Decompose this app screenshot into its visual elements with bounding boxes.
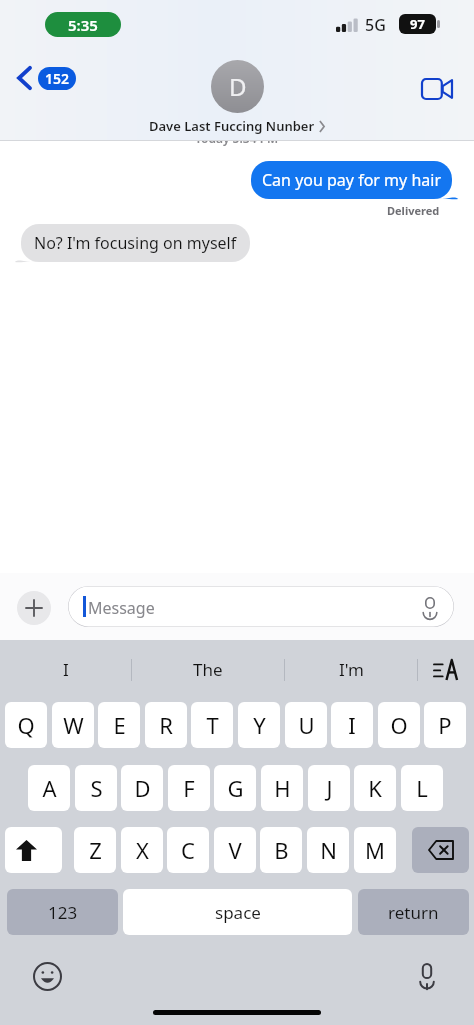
staticText: Dave Last Fuccing Nunber [149, 117, 315, 135]
staticText: S [90, 773, 103, 803]
button[interactable]: E [98, 702, 140, 748]
button[interactable]: I [0, 640, 131, 699]
button[interactable]: X [121, 827, 163, 873]
button[interactable]: S [75, 765, 117, 811]
button[interactable]: R [145, 702, 187, 748]
staticText: space [215, 901, 261, 924]
button[interactable]: A [28, 765, 70, 811]
staticText: T [206, 710, 219, 740]
staticText: W [63, 710, 84, 740]
staticText: K [368, 773, 382, 803]
button[interactable]: F [168, 765, 210, 811]
button[interactable]: Y [238, 702, 280, 748]
staticText: return [388, 901, 439, 924]
staticText: O [390, 710, 408, 740]
button[interactable]: V [214, 827, 256, 873]
button[interactable]: Add attachment [17, 591, 51, 625]
staticText: I'm [339, 658, 364, 681]
button[interactable]: N [307, 827, 349, 873]
staticText: N [320, 835, 337, 865]
button[interactable]: Dictation [404, 953, 450, 999]
staticText: C [181, 835, 195, 865]
button[interactable]: D [121, 765, 163, 811]
button[interactable]: W [52, 702, 94, 748]
staticText: H [274, 773, 291, 803]
button[interactable]: C [167, 827, 209, 873]
staticText: 97 [410, 15, 425, 33]
button[interactable]: Z [74, 827, 116, 873]
button[interactable]: return [358, 889, 469, 935]
staticText: Today 5:34 PM [195, 130, 279, 146]
staticText: 123 [48, 901, 78, 924]
staticText: E [113, 710, 126, 740]
staticText: 5G [365, 14, 386, 36]
staticText: I [63, 658, 69, 681]
button[interactable]: U [285, 702, 327, 748]
staticText: B [274, 835, 289, 865]
button[interactable]: FaceTime video call [414, 66, 460, 112]
staticText: M [365, 835, 385, 865]
staticText: G [227, 773, 244, 803]
button[interactable]: M [354, 827, 396, 873]
staticText: Q [17, 710, 35, 740]
staticText: Can you pay for my hair [262, 169, 441, 191]
staticText: X [136, 835, 149, 865]
staticText: R [159, 710, 173, 740]
button[interactable]: B [260, 827, 302, 873]
staticText: Z [89, 835, 102, 865]
button[interactable]: space [123, 889, 352, 935]
button[interactable]: Emoji keyboard [24, 953, 70, 999]
button[interactable]: The [132, 640, 284, 699]
staticText: I [348, 710, 356, 740]
staticText: No? I'm focusing on myself [34, 232, 237, 254]
staticText: F [183, 773, 195, 803]
button[interactable]: Formatting [418, 640, 474, 699]
staticText: D [134, 773, 151, 803]
button[interactable]: I'm [285, 640, 417, 699]
button[interactable]: G [214, 765, 256, 811]
button[interactable]: Message [68, 586, 454, 627]
button[interactable]: D [0, 60, 474, 135]
staticText: 5:35 [68, 15, 98, 35]
button[interactable]: P [424, 702, 466, 748]
staticText: U [298, 710, 315, 740]
staticText: Message [88, 597, 155, 619]
other: Dictate message [420, 597, 440, 617]
staticText: 152 [45, 69, 70, 88]
staticText: D [229, 70, 247, 103]
button[interactable]: T [191, 702, 233, 748]
button[interactable]: K [354, 765, 396, 811]
staticText: Delivered [387, 203, 440, 218]
staticText: A [42, 773, 57, 803]
staticText: The [193, 658, 223, 681]
staticText: V [228, 835, 242, 865]
button[interactable]: J [308, 765, 350, 811]
button[interactable]: I [331, 702, 373, 748]
button[interactable]: Shift [5, 827, 62, 873]
button[interactable]: L [401, 765, 443, 811]
staticText: L [416, 773, 428, 803]
staticText: Y [253, 710, 266, 740]
button[interactable]: H [261, 765, 303, 811]
button[interactable]: Back to 152 conversations [12, 62, 82, 94]
staticText: J [326, 773, 333, 803]
button[interactable]: Q [5, 702, 47, 748]
button[interactable]: 123 [7, 889, 118, 935]
button[interactable]: O [378, 702, 420, 748]
staticText: P [438, 710, 452, 740]
button[interactable]: Backspace [412, 827, 469, 873]
